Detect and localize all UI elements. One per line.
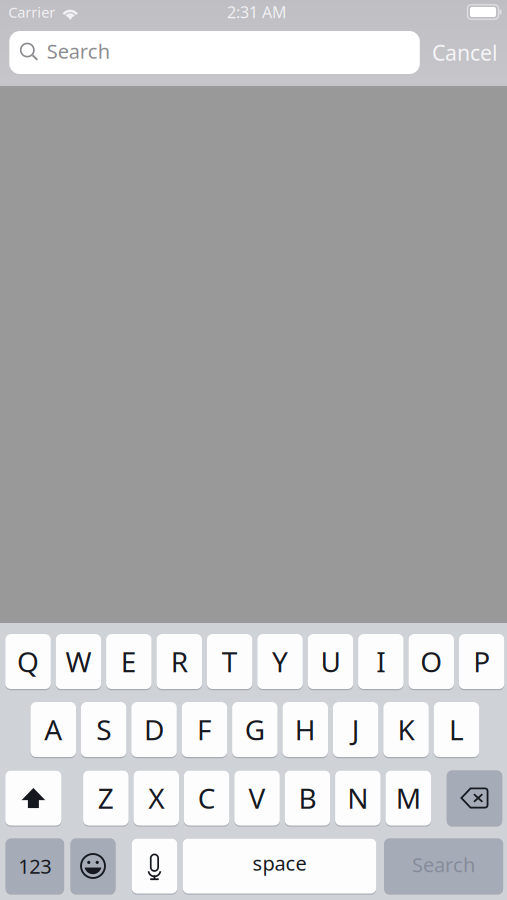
button[interactable]: F — [182, 702, 227, 758]
button[interactable]: I — [358, 634, 404, 690]
button[interactable]: L — [434, 702, 479, 758]
staticText: J — [352, 711, 360, 748]
staticText: 2:31 AM — [227, 1, 287, 23]
button[interactable]: W — [56, 634, 101, 690]
button[interactable]: T — [207, 634, 252, 690]
staticText: Search — [412, 851, 475, 878]
button[interactable]: U — [308, 634, 353, 690]
staticText: S — [96, 711, 111, 748]
staticText: H — [295, 711, 316, 748]
staticText: 123 — [18, 853, 51, 879]
staticText: F — [197, 711, 212, 748]
staticText: Y — [272, 643, 288, 680]
button[interactable]: Cancel — [420, 31, 498, 74]
button[interactable]: C — [184, 770, 229, 827]
button[interactable]: Dictation — [132, 838, 177, 895]
button[interactable]: P — [459, 634, 504, 690]
button[interactable]: O — [408, 634, 454, 690]
staticText: T — [222, 643, 238, 680]
button[interactable]: J — [333, 702, 378, 758]
staticText: G — [245, 711, 265, 748]
button[interactable]: E — [106, 634, 152, 690]
button[interactable]: Q — [5, 634, 51, 690]
button[interactable]: Search — [384, 838, 503, 895]
button[interactable]: space — [183, 838, 376, 895]
staticText: E — [121, 643, 137, 680]
staticText: B — [298, 779, 316, 817]
staticText: M — [396, 779, 421, 817]
button[interactable]: G — [232, 702, 278, 758]
staticText: D — [144, 711, 164, 748]
staticText: W — [65, 643, 91, 680]
staticText: R — [171, 643, 188, 680]
button[interactable]: Delete — [447, 770, 502, 827]
button[interactable]: K — [383, 702, 429, 758]
staticText: V — [248, 779, 265, 817]
staticText: C — [198, 779, 216, 817]
button[interactable]: A — [30, 702, 76, 758]
button[interactable]: D — [131, 702, 177, 758]
staticText: P — [473, 643, 490, 680]
staticText: Z — [98, 779, 114, 817]
button[interactable]: Y — [257, 634, 303, 690]
button[interactable]: Shift — [5, 770, 61, 827]
button[interactable]: S — [81, 702, 126, 758]
button[interactable]: B — [285, 770, 330, 827]
staticText: K — [398, 711, 415, 748]
staticText: Q — [17, 643, 39, 680]
staticText: I — [376, 643, 385, 680]
staticText: Cancel — [432, 38, 498, 67]
staticText: N — [347, 779, 368, 817]
button[interactable]: R — [156, 634, 202, 690]
button[interactable]: X — [133, 770, 179, 827]
staticText: Search — [47, 38, 110, 64]
button[interactable]: Emoji — [70, 838, 115, 895]
staticText: O — [420, 643, 442, 680]
button[interactable]: Z — [83, 770, 129, 827]
staticText: Carrier — [8, 2, 55, 22]
staticText: A — [44, 711, 62, 748]
button[interactable]: M — [385, 770, 431, 827]
button[interactable]: H — [282, 702, 328, 758]
button[interactable]: N — [335, 770, 381, 827]
button[interactable]: V — [234, 770, 280, 827]
staticText: U — [320, 643, 340, 680]
staticText: L — [449, 711, 464, 748]
staticText: X — [148, 779, 164, 817]
button[interactable]: 123 — [6, 838, 64, 895]
staticText: space — [252, 850, 306, 876]
